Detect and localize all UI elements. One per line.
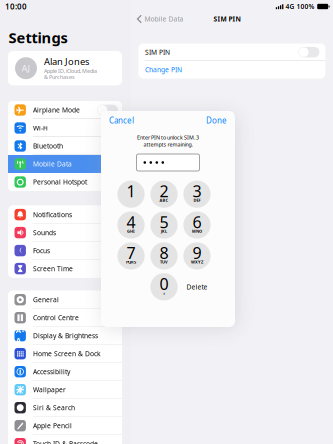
button[interactable]: Accessibility (8, 363, 122, 381)
staticText: Bluetooth (33, 142, 63, 150)
button[interactable]: 4 (117, 211, 145, 239)
staticText: Touch ID & Passcode (33, 439, 98, 444)
button[interactable]: Cancel (107, 113, 136, 127)
staticText: Mobile Data (144, 15, 183, 23)
staticText: Airplane Mode (33, 106, 80, 114)
staticText: AA (16, 325, 25, 346)
staticText: ABC (159, 197, 168, 203)
button[interactable]: Siri & Search (8, 399, 122, 417)
button[interactable]: Done (204, 113, 229, 127)
staticText: Focus (33, 246, 50, 255)
staticText: PQRS (126, 259, 136, 265)
staticText: 4G (285, 2, 294, 11)
staticText: Wi-Fi (33, 124, 48, 132)
button[interactable]: Personal Hotspot (8, 173, 122, 191)
staticText: Settings (8, 28, 67, 47)
staticText: 3 (192, 180, 201, 202)
staticText: JKL (161, 228, 167, 234)
staticText: 2 (159, 180, 168, 202)
button[interactable]: Mobile Data (8, 155, 122, 173)
staticText: MNO (192, 228, 202, 234)
staticText: Alan Jones (44, 55, 89, 68)
staticText: Cancel (109, 115, 134, 126)
staticText: SIM PIN (213, 15, 240, 23)
button[interactable]: 2 (150, 180, 178, 208)
staticText: 100% (296, 2, 314, 11)
button[interactable]: General (8, 291, 122, 309)
staticText: TUV (160, 259, 168, 265)
button[interactable]: Bluetooth (8, 137, 122, 155)
button[interactable]: Apple Pencil (8, 417, 122, 435)
button[interactable]: Sounds (8, 224, 122, 242)
staticText: Home Screen & Dock (33, 349, 101, 358)
button[interactable]: AA (8, 327, 122, 345)
staticText: 5 (159, 211, 168, 233)
staticText: Wallpaper (33, 385, 66, 394)
button[interactable]: Delete (183, 273, 211, 300)
staticText: Change PIN (145, 65, 182, 74)
staticText: Delete (186, 282, 207, 291)
button[interactable]: Touch ID & Passcode (8, 435, 122, 444)
staticText: Personal Hotspot (33, 178, 87, 186)
button[interactable]: Focus (8, 242, 122, 260)
staticText: Notifications (33, 210, 72, 219)
button[interactable]: Notifications (8, 206, 122, 224)
staticText: Accessibility (33, 367, 70, 376)
button[interactable]: 1 (117, 180, 145, 208)
staticText: 10:00 (5, 1, 27, 12)
staticText: Screen Time (33, 264, 73, 273)
staticText: Done (206, 115, 227, 126)
button[interactable]: Airplane Mode (8, 101, 122, 119)
staticText: Control Centre (33, 313, 79, 322)
button[interactable]: AJ (8, 51, 122, 85)
button[interactable]: Control Centre (8, 309, 122, 327)
button[interactable]: Change PIN (138, 61, 325, 79)
staticText: & Purchases (44, 73, 75, 80)
staticText: Apple ID, iCloud, Media (44, 67, 97, 74)
button[interactable]: 0 (150, 273, 178, 300)
staticText: SIM PIN (145, 48, 170, 57)
staticText: Sounds (33, 228, 56, 237)
staticText: General (33, 295, 59, 304)
staticText: Enter PIN to unlock SIM. 3 (137, 134, 199, 141)
staticText: + (163, 290, 165, 295)
staticText: Apple Pencil (33, 421, 72, 430)
staticText: Display & Brightness (33, 331, 98, 340)
button[interactable]: Wallpaper (8, 381, 122, 399)
staticText: 6 (192, 211, 201, 233)
staticText: 1 (126, 180, 135, 202)
button[interactable]: 9 (183, 242, 211, 270)
staticText: GHI (127, 228, 135, 234)
staticText: 0 (159, 273, 168, 294)
button[interactable]: 3 (183, 180, 211, 208)
button[interactable]: Mobile Data (131, 12, 183, 26)
staticText: 9 (192, 242, 201, 263)
button[interactable]: 8 (150, 242, 178, 270)
button[interactable]: 5 (150, 211, 178, 239)
staticText: 7 (126, 242, 135, 263)
button[interactable]: 6 (183, 211, 211, 239)
button[interactable]: Home Screen & Dock (8, 345, 122, 363)
button[interactable]: Wi-Fi (8, 119, 122, 137)
staticText: Siri & Search (33, 403, 75, 412)
button[interactable]: 7 (117, 242, 145, 270)
staticText: 4 (126, 211, 135, 233)
staticText: Mobile Data (33, 160, 72, 168)
staticText: DEF (193, 197, 200, 203)
staticText: WXYZ (191, 259, 203, 265)
staticText: attempts remaining. (143, 141, 192, 148)
staticText: AJ (21, 62, 30, 74)
staticText: 8 (159, 242, 168, 263)
button[interactable]: Screen Time (8, 260, 122, 278)
